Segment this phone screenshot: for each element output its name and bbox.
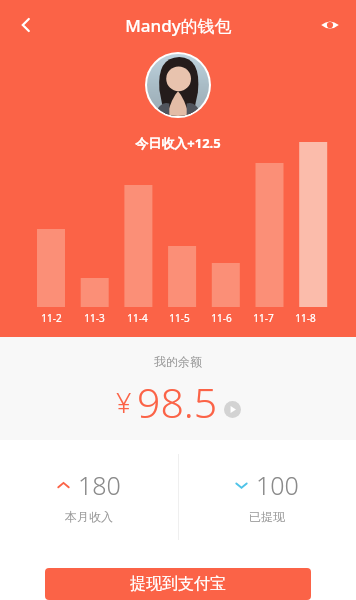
staticText: 11-6 (211, 311, 232, 325)
staticText: ¥ (116, 384, 132, 421)
staticText: 我的余额 (154, 354, 202, 369)
button[interactable]: Back (4, 3, 48, 47)
button[interactable]: Balance details (224, 401, 241, 418)
staticText: 11-2 (41, 311, 62, 325)
button[interactable]: Toggle balance visibility (308, 3, 352, 47)
staticText: 已提现 (249, 509, 285, 524)
staticText: 本月收入 (65, 509, 113, 524)
staticText: 98.5 (137, 374, 218, 430)
button[interactable]: Profile photo (145, 52, 211, 118)
staticText: 11-4 (127, 311, 148, 325)
button[interactable]: 100 (178, 440, 356, 555)
staticText: 今日收入+12.5 (135, 134, 221, 152)
staticText: 11-3 (84, 311, 105, 325)
staticText: 11-8 (295, 311, 316, 325)
button[interactable]: 提现到支付宝 (45, 568, 311, 600)
staticText: 提现到支付宝 (130, 574, 226, 594)
staticText: 100 (256, 468, 299, 502)
staticText: 11-7 (253, 311, 274, 325)
staticText: 180 (78, 468, 121, 502)
staticText: Mandy的钱包 (125, 14, 232, 37)
staticText: 11-5 (169, 311, 190, 325)
button[interactable]: 180 (0, 440, 178, 555)
